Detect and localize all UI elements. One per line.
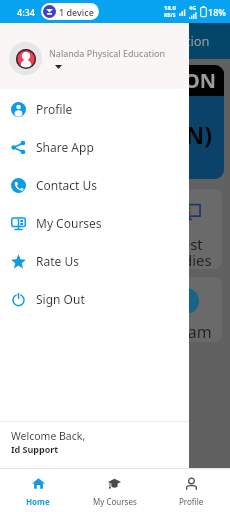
- button[interactable]: Contact Us: [0, 166, 189, 204]
- staticText: Nalanda Physical Education: [49, 47, 166, 59]
- staticText: Latest Studies: [160, 234, 212, 269]
- button[interactable]: Sign Out: [0, 280, 189, 318]
- staticText: 4G: [189, 4, 197, 11]
- button[interactable]: Rate Us: [0, 242, 189, 280]
- button[interactable]: Home: [0, 469, 76, 512]
- staticText: Rate Us: [36, 253, 79, 269]
- staticText: 4:34: [17, 6, 35, 18]
- staticText: Id Support: [11, 443, 59, 455]
- button[interactable]: Profile: [0, 90, 189, 128]
- staticText: Home: [26, 496, 50, 507]
- staticText: Contact Us: [36, 177, 98, 193]
- staticText: Share App: [36, 139, 94, 155]
- staticText: Sign Out: [36, 291, 85, 307]
- staticText: My Courses: [36, 215, 102, 231]
- button[interactable]: Profile: [153, 469, 230, 512]
- staticText: Profile: [36, 101, 73, 117]
- staticText: Program: [146, 321, 212, 342]
- staticText: 1 device: [59, 6, 94, 18]
- staticText: 18.0: [164, 4, 176, 12]
- staticText: 18%: [208, 6, 226, 18]
- staticText: My Courses: [93, 496, 137, 507]
- staticText: Nalanda Physical Education: [42, 32, 210, 50]
- staticText: 1: [181, 290, 191, 312]
- staticText: (HINDI VERSION): [18, 119, 213, 150]
- staticText: Welcome Back,: [11, 429, 86, 443]
- button[interactable]: Share App: [0, 128, 189, 166]
- staticText: SPECIAL EDUCATION: [13, 67, 217, 94]
- button[interactable]: My Courses: [0, 204, 189, 242]
- staticText: Profile: [179, 496, 204, 507]
- staticText: KB/S: [164, 12, 176, 19]
- button[interactable]: My Courses: [76, 469, 153, 512]
